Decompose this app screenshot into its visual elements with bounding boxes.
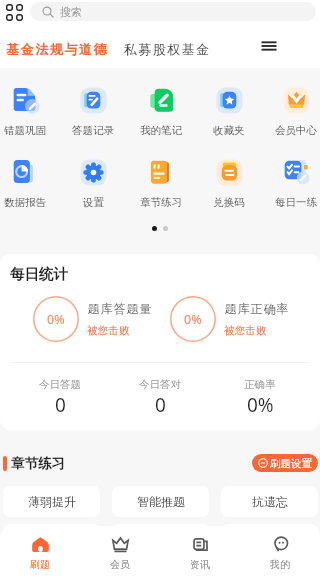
button[interactable]: 资讯 <box>160 526 240 579</box>
button[interactable] <box>112 524 209 555</box>
button[interactable]: 私募股权基金 <box>124 41 211 57</box>
button[interactable]: 兑换码 <box>195 157 263 209</box>
button[interactable]: 基金法规与道德 <box>6 41 109 57</box>
staticText: 答题记录 <box>72 124 114 137</box>
staticText: 私募股权基金 <box>124 41 211 57</box>
staticText: 刷题 <box>30 558 50 571</box>
button[interactable]: All categories <box>6 4 23 21</box>
staticText: 0% <box>247 392 274 418</box>
staticText: 我的笔记 <box>140 124 182 137</box>
button[interactable]: 刷题设置 <box>252 454 318 472</box>
staticText: 题库正确率 <box>224 301 289 316</box>
staticText: 收藏夹 <box>213 124 245 137</box>
staticText: 0% <box>47 311 65 328</box>
button[interactable]: 会员中心 <box>263 85 320 137</box>
staticText: 0 <box>55 392 66 418</box>
staticText: 错题巩固 <box>4 124 46 137</box>
staticText: 会员 <box>110 558 130 571</box>
button[interactable]: 设置 <box>59 157 127 209</box>
staticText: 智能推题 <box>137 494 185 509</box>
button[interactable]: 每日一练 <box>263 157 320 209</box>
staticText: 题库答题量 <box>87 301 152 316</box>
staticText: 资讯 <box>190 558 210 571</box>
button[interactable] <box>3 524 100 555</box>
button[interactable] <box>221 524 318 555</box>
button[interactable]: 章节练习 <box>127 157 195 209</box>
staticText: 搜索 <box>60 5 82 19</box>
staticText: 我的 <box>270 558 290 571</box>
staticText: 0 <box>155 392 166 418</box>
button[interactable]: 我的笔记 <box>127 85 195 137</box>
staticText: 0% <box>184 311 202 328</box>
staticText: 抗遗忘 <box>252 494 288 509</box>
button[interactable]: 刷题 <box>0 526 80 579</box>
staticText: 今日答题 <box>39 378 81 391</box>
staticText: 章节练习 <box>140 196 182 209</box>
staticText: 设置 <box>83 196 104 209</box>
button[interactable]: 抗遗忘 <box>221 486 318 517</box>
staticText: 今日答对 <box>139 378 181 391</box>
staticText: 薄弱提升 <box>28 494 76 509</box>
staticText: 被您击败 <box>224 324 267 337</box>
staticText: 刷题设置 <box>270 457 312 470</box>
button[interactable]: 错题巩固 <box>0 85 59 137</box>
staticText: 正确率 <box>244 378 276 391</box>
staticText: 每日一练 <box>275 196 317 209</box>
button[interactable]: 我的 <box>240 526 320 579</box>
staticText: 基金法规与道德 <box>6 41 109 57</box>
button[interactable]: 数据报告 <box>0 157 59 209</box>
button[interactable]: Menu <box>254 31 284 61</box>
button[interactable]: 搜索 <box>30 2 316 21</box>
staticText: 章节练习 <box>11 455 65 472</box>
button[interactable]: 会员 <box>80 526 160 579</box>
button[interactable]: 薄弱提升 <box>3 486 100 517</box>
staticText: 数据报告 <box>4 196 46 209</box>
staticText: 兑换码 <box>213 196 245 209</box>
button[interactable]: 收藏夹 <box>195 85 263 137</box>
staticText: 被您击败 <box>87 324 130 337</box>
staticText: 会员中心 <box>275 124 317 137</box>
button[interactable]: 智能推题 <box>112 486 209 517</box>
button[interactable]: 答题记录 <box>59 85 127 137</box>
staticText: 每日统计 <box>10 265 68 283</box>
